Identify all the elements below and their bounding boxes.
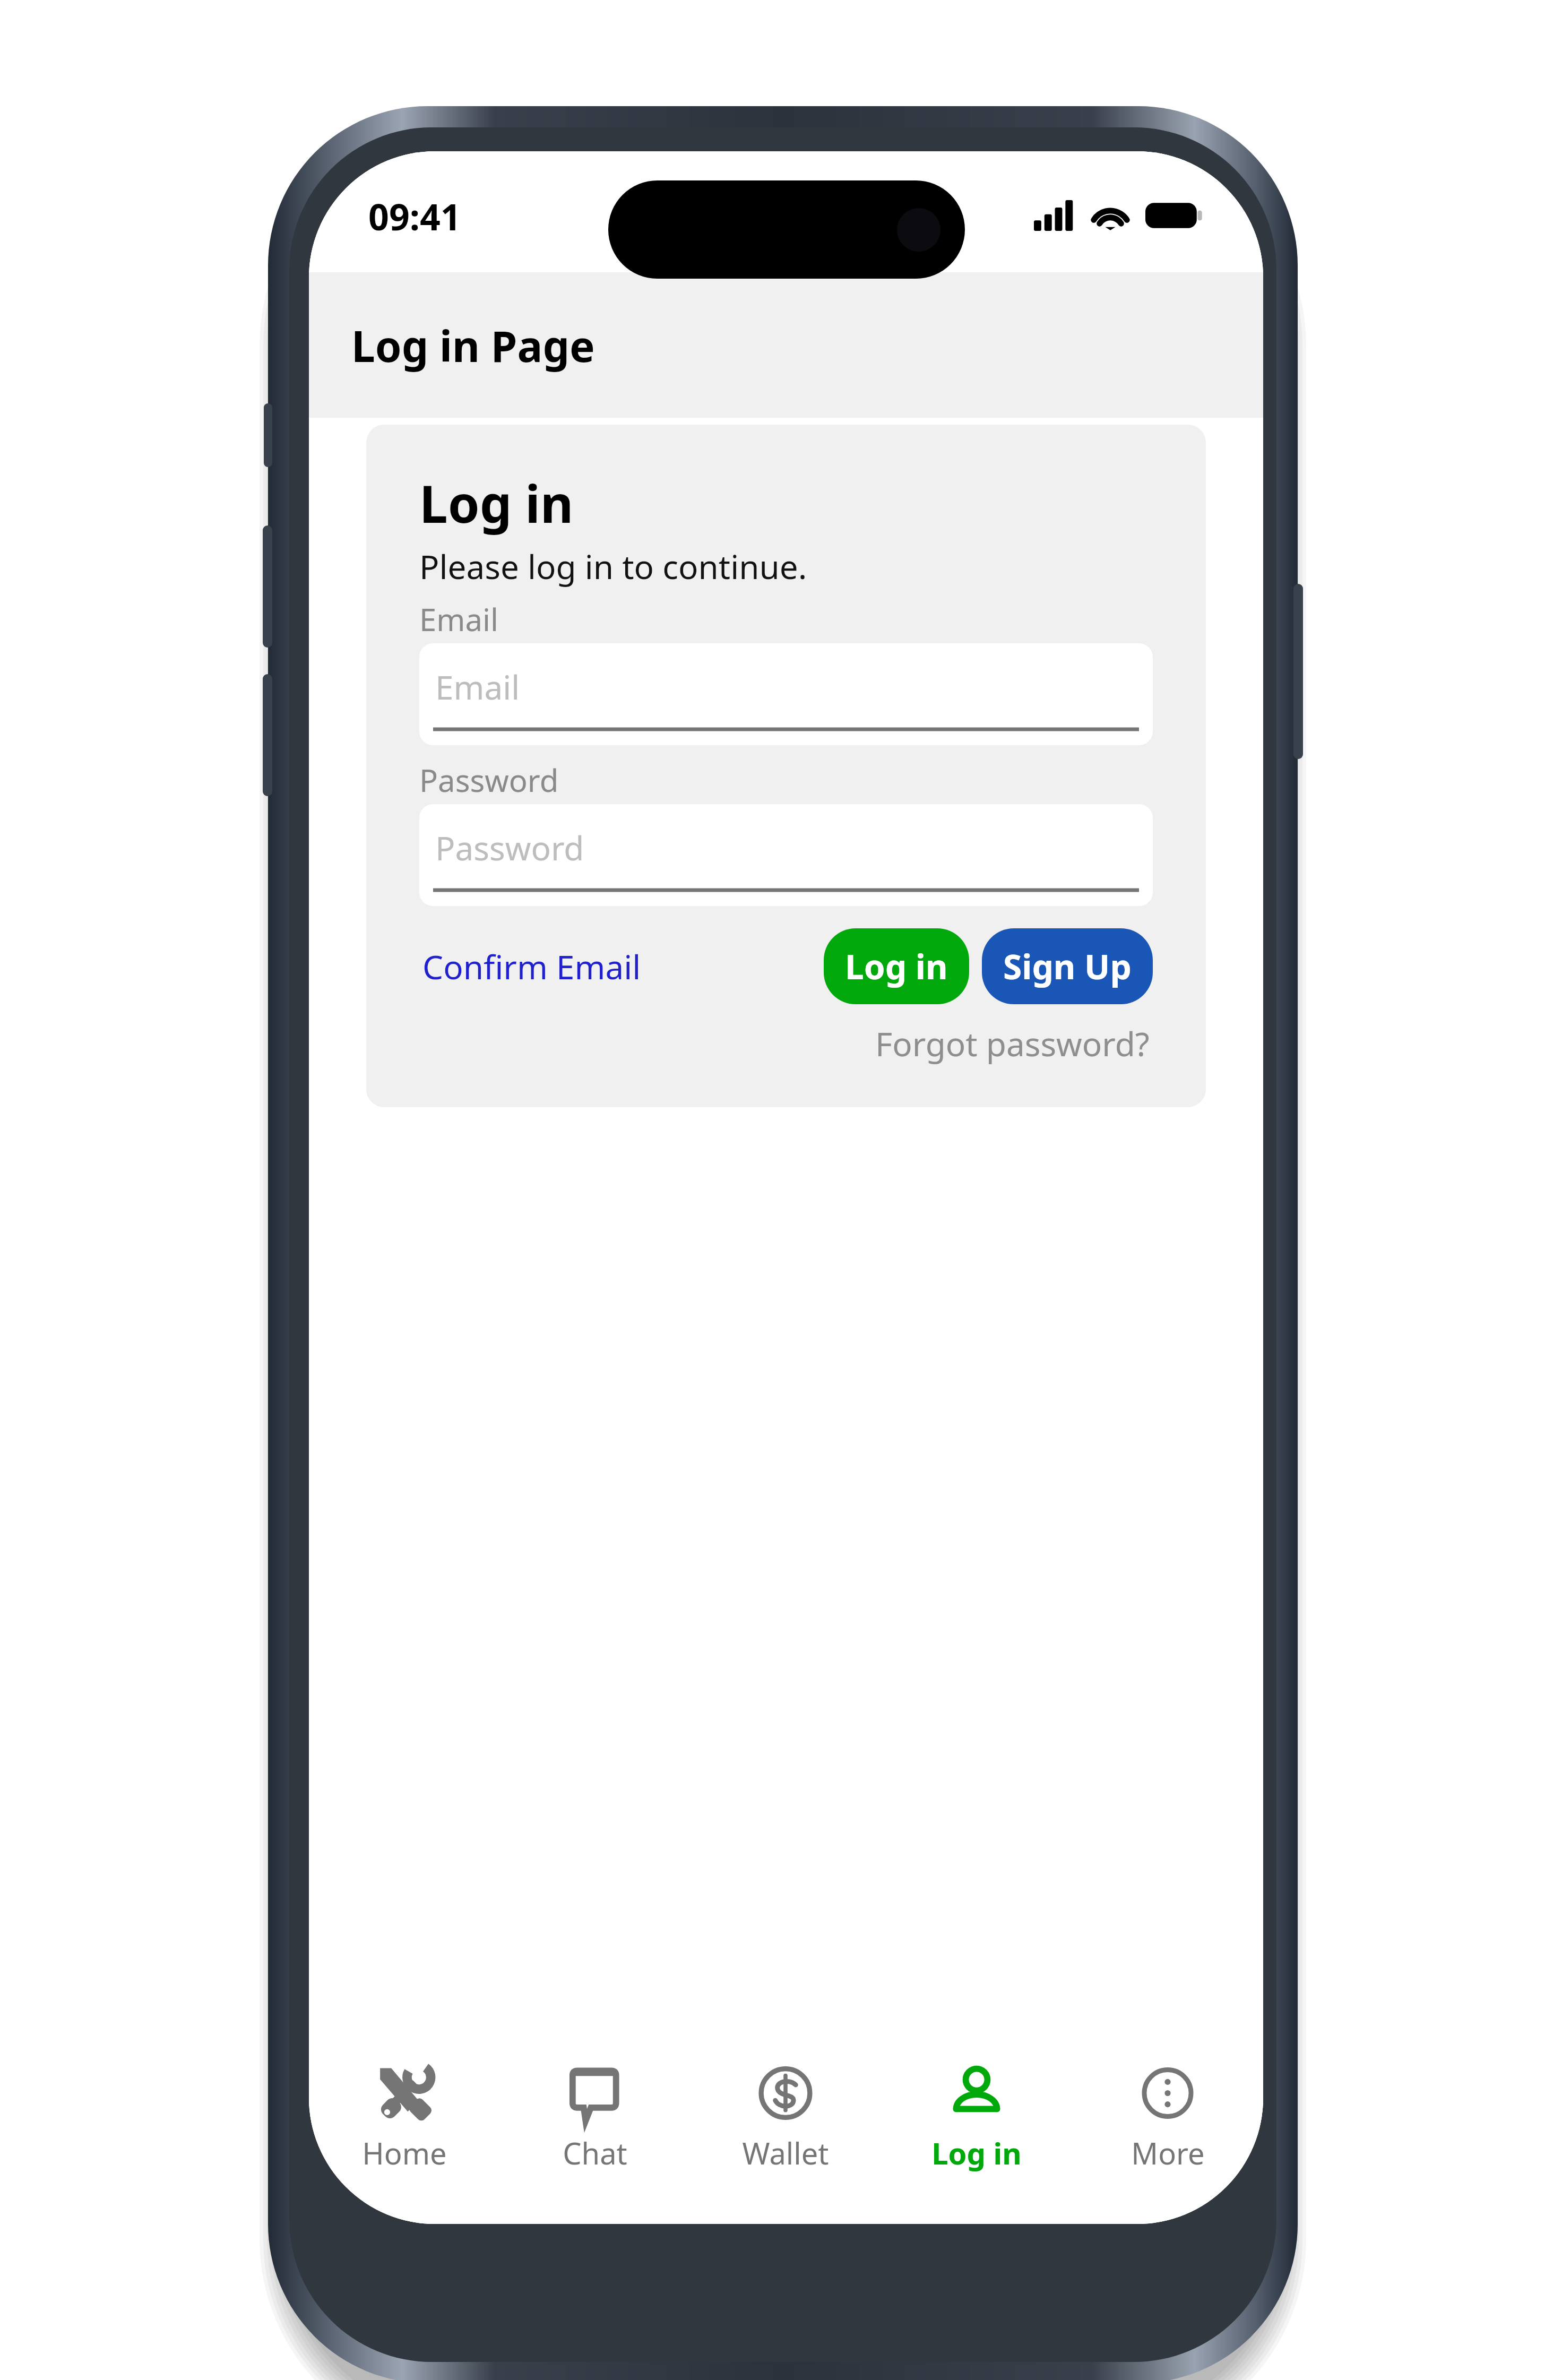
staticText: More	[1131, 2133, 1205, 2173]
staticText: Sign Up	[1003, 943, 1132, 989]
staticText: Home	[362, 2133, 447, 2173]
button[interactable]: Confirm Email	[419, 939, 644, 994]
staticText: Confirm Email	[422, 944, 641, 989]
staticText: Forgot password?	[875, 1021, 1150, 1066]
staticText: 09:41	[368, 192, 461, 241]
button[interactable]: Password	[419, 804, 1153, 906]
staticText: Password	[435, 825, 584, 870]
staticText: Log in	[845, 943, 948, 989]
staticText: Log in	[931, 2133, 1022, 2173]
button[interactable]: Forgot password?	[872, 1017, 1153, 1070]
button[interactable]: Log in	[881, 2049, 1072, 2224]
staticText: Email	[419, 598, 498, 640]
staticText: Email	[435, 665, 520, 709]
button[interactable]: Wallet	[690, 2049, 881, 2224]
staticText: Chat	[563, 2133, 627, 2173]
staticText: Password	[419, 759, 559, 801]
button[interactable]: Chat	[499, 2049, 690, 2224]
button[interactable]: More	[1072, 2049, 1263, 2224]
staticText: Log in Page	[351, 316, 595, 374]
staticText: Please log in to continue.	[419, 544, 807, 589]
button[interactable]: Email	[419, 643, 1153, 745]
button[interactable]: Log in	[824, 928, 969, 1004]
staticText: Log in	[419, 468, 574, 538]
staticText: Wallet	[742, 2133, 829, 2173]
button[interactable]: Sign Up	[982, 928, 1153, 1004]
button[interactable]: Home	[309, 2049, 499, 2224]
